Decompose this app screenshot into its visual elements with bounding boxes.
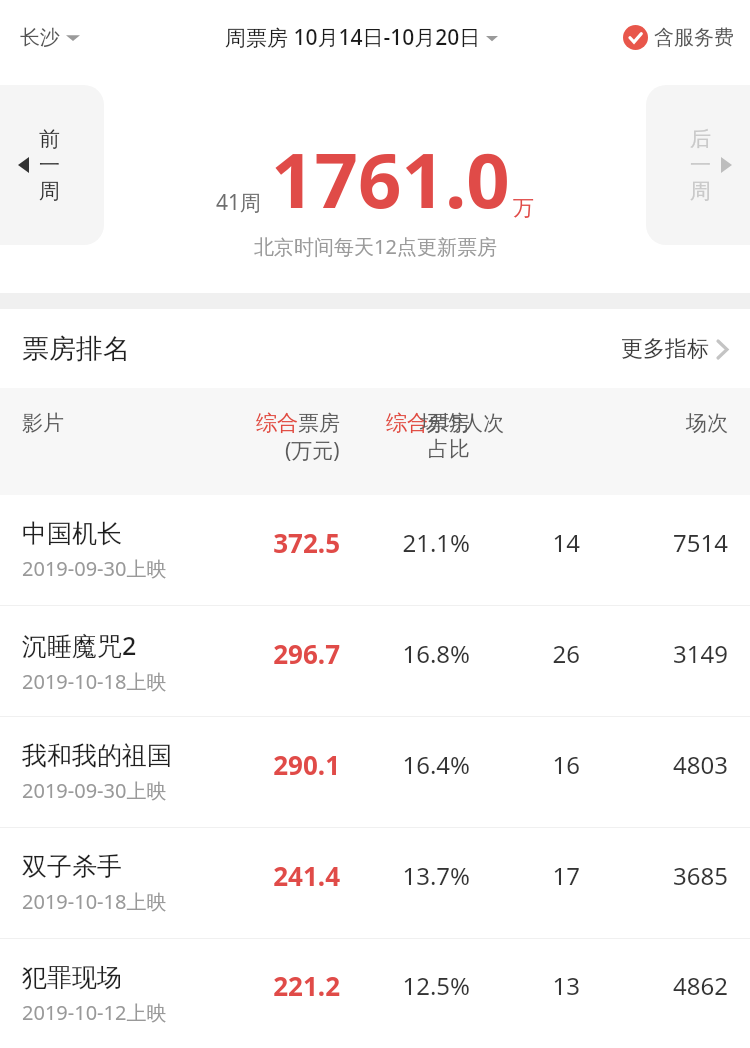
staticText: 16.8% <box>310 637 470 670</box>
staticText: 12.5% <box>310 969 470 1002</box>
staticText: 241.4 <box>180 858 340 893</box>
button[interactable]: 沉睡魔咒2 <box>0 606 750 716</box>
button[interactable]: 前 <box>0 85 104 245</box>
staticText: 票房 <box>428 410 470 436</box>
staticText: 2019-10-12上映 <box>22 999 167 1026</box>
staticText: 一 <box>690 152 711 178</box>
staticText: 双子杀手 <box>22 851 122 882</box>
staticText: 更多指标 <box>621 335 709 363</box>
staticText: 16 <box>420 748 580 781</box>
button[interactable]: 后 <box>646 85 750 245</box>
staticText: 3685 <box>568 859 728 892</box>
staticText: 万 <box>513 195 534 221</box>
staticText: 2019-10-18上映 <box>22 888 167 915</box>
other: 含服务费已选中 <box>623 25 648 50</box>
button[interactable]: 中国机长 <box>0 495 750 605</box>
staticText: 7514 <box>568 526 728 559</box>
staticText: 2019-09-30上映 <box>22 555 167 582</box>
staticText: 21.1% <box>310 526 470 559</box>
staticText: 含服务费 <box>654 25 734 50</box>
staticText: 13 <box>420 969 580 1002</box>
staticText: 周票房 10月14日-10月20日 <box>225 23 481 52</box>
button[interactable]: 更多指标 <box>617 331 732 367</box>
staticText: 26 <box>420 637 580 670</box>
staticText: 我和我的祖国 <box>22 740 172 771</box>
staticText: 长沙 <box>20 25 60 50</box>
staticText: 场次 <box>568 410 728 436</box>
staticText: 占比 <box>428 436 470 462</box>
staticText: 221.2 <box>180 968 340 1003</box>
button[interactable]: 双子杀手 <box>0 828 750 938</box>
staticText: 周 <box>39 178 60 204</box>
staticText: 372.5 <box>180 525 340 560</box>
button[interactable]: 长沙 <box>14 19 86 56</box>
staticText: 3149 <box>568 637 728 670</box>
button[interactable]: 含服务费已选中 <box>623 25 734 50</box>
staticText: 14 <box>420 526 580 559</box>
staticText: 综合 <box>256 410 298 436</box>
staticText: 1761.0 <box>271 127 510 231</box>
staticText: 4862 <box>568 969 728 1002</box>
staticText: (万元) <box>285 436 340 465</box>
staticText: 16.4% <box>310 748 470 781</box>
staticText: 4803 <box>568 748 728 781</box>
staticText: 2019-10-18上映 <box>22 668 167 695</box>
staticText: 中国机长 <box>22 518 122 549</box>
staticText: 后 <box>690 126 711 152</box>
staticText: 17 <box>420 859 580 892</box>
staticText: 影片 <box>22 410 64 436</box>
staticText: 犯罪现场 <box>22 962 122 993</box>
staticText: 周 <box>690 178 711 204</box>
button[interactable]: 周票房 10月14日-10月20日 <box>225 23 498 52</box>
staticText: 票房 <box>298 410 340 436</box>
staticText: 场均人次 <box>420 410 580 436</box>
staticText: 票房排名 <box>22 332 130 366</box>
staticText: 前 <box>39 126 60 152</box>
staticText: 290.1 <box>180 747 340 782</box>
staticText: 一 <box>39 152 60 178</box>
staticText: 41周 <box>216 188 262 217</box>
staticText: 综合 <box>386 410 428 436</box>
button[interactable]: 犯罪现场 <box>0 939 750 1048</box>
staticText: 13.7% <box>310 859 470 892</box>
staticText: 北京时间每天12点更新票房 <box>254 233 497 260</box>
staticText: 296.7 <box>180 636 340 671</box>
staticText: 沉睡魔咒2 <box>22 628 137 662</box>
button[interactable]: 我和我的祖国 <box>0 717 750 827</box>
staticText: 2019-09-30上映 <box>22 777 167 804</box>
